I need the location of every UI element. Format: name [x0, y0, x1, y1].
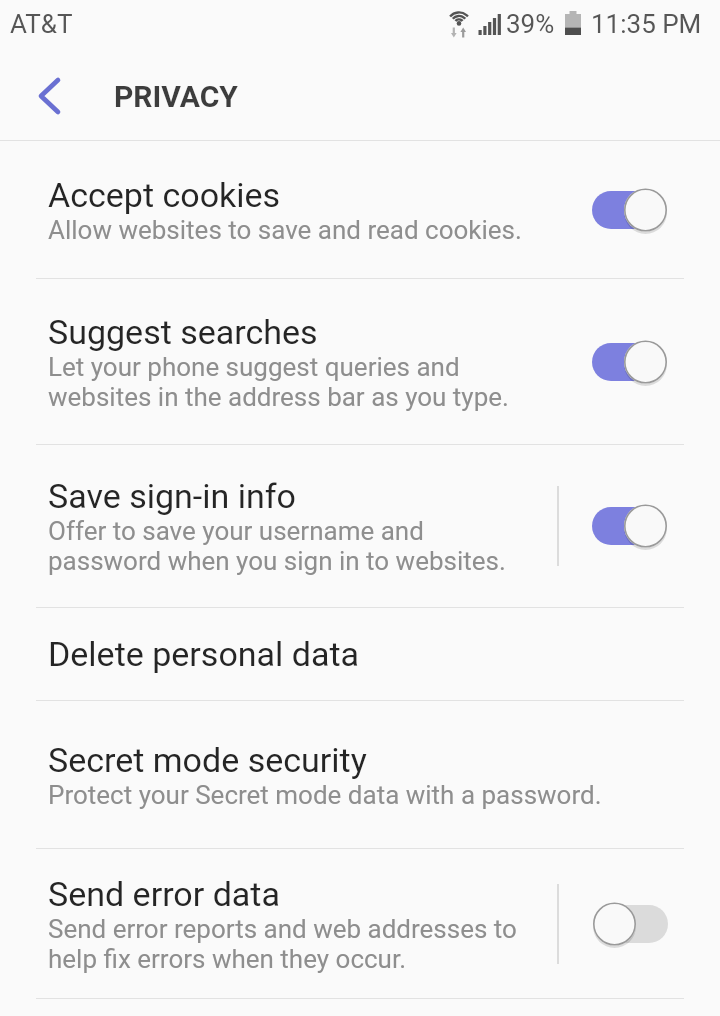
staticText: Suggest searches: [48, 312, 318, 352]
button[interactable]: Secret mode security: [0, 701, 720, 848]
staticText: Send error data: [48, 874, 280, 914]
staticText: Protect your Secret mode data with a pas…: [48, 780, 602, 810]
staticText: Save sign-in info: [48, 476, 296, 516]
staticText: Let your phone suggest queries and websi…: [48, 352, 509, 412]
staticText: Send error reports and web addresses to …: [48, 914, 517, 974]
staticText: Accept cookies: [48, 175, 281, 215]
button[interactable]: Save sign-in info: [0, 445, 720, 607]
button[interactable]: Send error data: [0, 849, 720, 998]
staticText: 11:35 PM: [591, 9, 702, 39]
staticText: AT&T: [10, 9, 73, 39]
button[interactable]: [592, 902, 668, 946]
button[interactable]: [22, 69, 76, 123]
button[interactable]: [592, 504, 668, 548]
staticText: 39%: [506, 9, 555, 39]
staticText: Offer to save your username and password…: [48, 516, 506, 576]
button[interactable]: Suggest searches: [0, 279, 720, 444]
staticText: Delete personal data: [48, 634, 360, 674]
staticText: Allow websites to save and read cookies.: [48, 215, 522, 245]
button[interactable]: Delete personal data: [0, 608, 720, 700]
staticText: PRIVACY: [114, 79, 238, 114]
staticText: Secret mode security: [48, 740, 367, 780]
button[interactable]: [592, 340, 668, 384]
button[interactable]: [592, 188, 668, 232]
button[interactable]: Accept cookies: [0, 141, 720, 278]
